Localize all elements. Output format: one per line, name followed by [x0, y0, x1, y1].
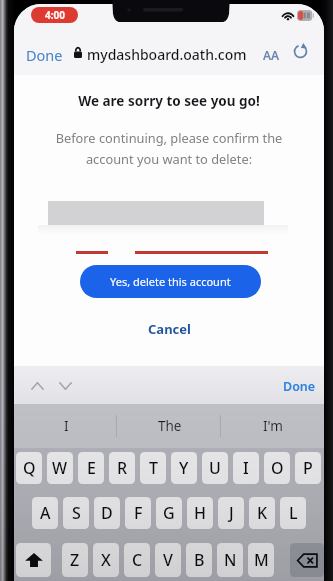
staticText: Y — [179, 457, 189, 479]
staticText: Z — [70, 549, 80, 571]
staticText: W — [52, 457, 68, 479]
button[interactable]: A — [32, 497, 58, 529]
button[interactable]: I — [233, 452, 259, 484]
staticText: K — [257, 502, 268, 524]
button[interactable]: V — [155, 543, 181, 577]
button[interactable]: The — [118, 404, 221, 448]
staticText: B — [194, 549, 205, 571]
staticText: T — [149, 457, 158, 479]
staticText: 4:00 — [45, 8, 65, 22]
button[interactable]: Text size options — [260, 42, 283, 68]
staticText: I'm — [263, 417, 283, 435]
staticText: J — [229, 502, 234, 524]
staticText: Q — [23, 457, 36, 479]
staticText: H — [194, 502, 206, 524]
staticText: The — [158, 417, 182, 435]
button[interactable]: Previous form field — [25, 375, 49, 397]
staticText: N — [224, 549, 237, 571]
button[interactable]: F — [125, 497, 151, 529]
button[interactable]: Shift — [16, 543, 51, 577]
button[interactable]: O — [264, 452, 290, 484]
staticText: M — [254, 549, 269, 571]
staticText: S — [72, 502, 81, 524]
staticText: We are sorry to see you go! — [14, 92, 324, 110]
staticText: P — [303, 457, 313, 479]
staticText: Done — [283, 378, 316, 395]
button[interactable]: N — [217, 543, 243, 577]
staticText: Cancel — [148, 320, 191, 338]
button[interactable]: Done — [278, 374, 321, 399]
staticText: G — [163, 502, 175, 524]
button[interactable]: K — [249, 497, 275, 529]
staticText: A — [40, 502, 51, 524]
button[interactable]: Next form field — [53, 375, 77, 397]
button[interactable]: Q — [16, 452, 42, 484]
button[interactable]: Delete — [290, 543, 324, 577]
button[interactable]: U — [202, 452, 228, 484]
staticText: C — [132, 549, 143, 571]
staticText: Done — [26, 45, 63, 65]
staticText: O — [271, 457, 284, 479]
button[interactable]: H — [187, 497, 213, 529]
button[interactable]: M — [248, 543, 274, 577]
button[interactable]: R — [109, 452, 135, 484]
button[interactable]: Cancel — [136, 315, 203, 343]
button[interactable]: L — [280, 497, 306, 529]
staticText: I — [243, 457, 249, 479]
staticText: Before continuing, please confirm the ac… — [24, 129, 314, 168]
button[interactable]: B — [186, 543, 212, 577]
staticText: X — [101, 549, 111, 571]
staticText: U — [209, 457, 221, 479]
staticText: R — [117, 457, 128, 479]
button[interactable]: Yes, delete this account — [80, 265, 261, 298]
button[interactable]: D — [94, 497, 120, 529]
button[interactable]: W — [47, 452, 73, 484]
staticText: V — [163, 549, 173, 571]
staticText: E — [87, 457, 96, 479]
button[interactable]: I — [14, 404, 118, 448]
staticText: I — [64, 417, 69, 435]
button[interactable]: Z — [62, 543, 88, 577]
button[interactable]: Y — [171, 452, 197, 484]
button[interactable]: I'm — [221, 404, 324, 448]
staticText: AA — [263, 47, 280, 63]
button[interactable]: C — [124, 543, 150, 577]
staticText: D — [101, 502, 113, 524]
button[interactable]: S — [63, 497, 89, 529]
button[interactable]: Reload page — [290, 41, 311, 62]
button[interactable]: Done — [21, 40, 68, 70]
staticText: L — [289, 502, 298, 524]
button[interactable]: J — [218, 497, 244, 529]
staticText: Yes, delete this account — [110, 274, 231, 289]
staticText: F — [134, 502, 143, 524]
button[interactable]: T — [140, 452, 166, 484]
staticText: mydashboard.oath.com — [87, 45, 247, 64]
button[interactable]: E — [78, 452, 104, 484]
button[interactable]: P — [295, 452, 321, 484]
button[interactable]: X — [93, 543, 119, 577]
button[interactable]: G — [156, 497, 182, 529]
